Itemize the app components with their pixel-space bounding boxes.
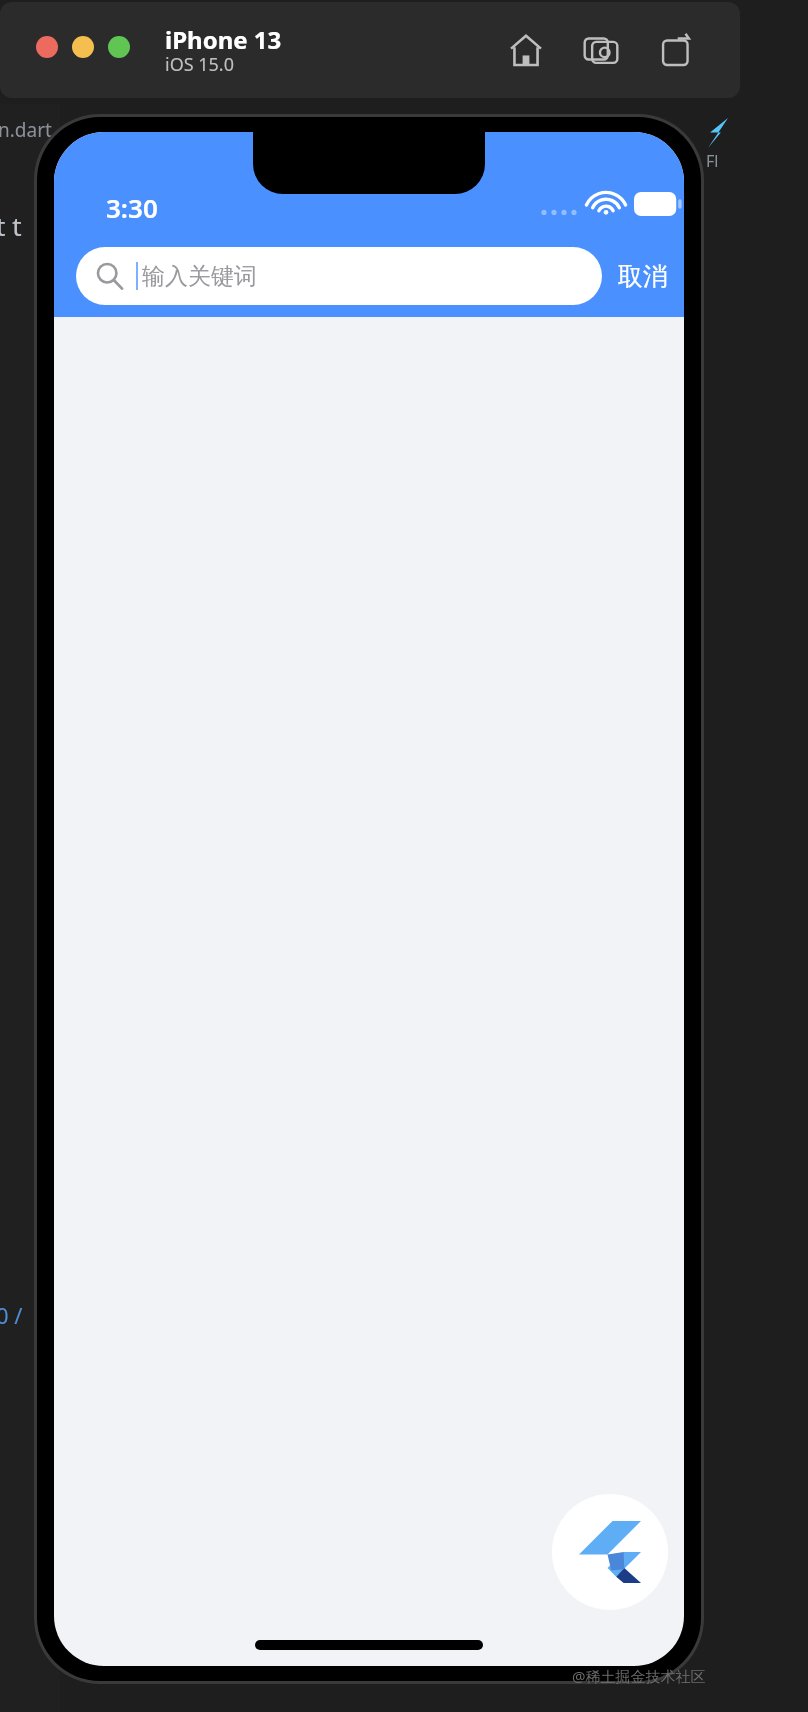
staticText: 3:30 bbox=[106, 190, 158, 225]
button[interactable] bbox=[72, 36, 94, 58]
button[interactable]: Home bbox=[500, 24, 552, 76]
staticText: iOS 15.0 bbox=[165, 52, 234, 77]
staticText: 0 / bbox=[0, 1300, 23, 1330]
staticText: t t bbox=[0, 208, 22, 243]
staticText: n.dart bbox=[0, 117, 52, 143]
button[interactable]: Rotate bbox=[650, 24, 702, 76]
staticText: 取消 bbox=[618, 261, 668, 292]
other: Battery bbox=[634, 192, 682, 216]
staticText: 输入关键词 bbox=[142, 262, 257, 291]
button[interactable] bbox=[36, 36, 58, 58]
button[interactable]: 输入关键词 bbox=[76, 247, 602, 305]
button[interactable]: Flutter bbox=[552, 1494, 668, 1610]
button[interactable]: 取消 bbox=[602, 247, 684, 305]
staticText: @稀土掘金技术社区 bbox=[572, 1666, 706, 1686]
staticText: Fl bbox=[706, 150, 719, 172]
staticText: iPhone 13 bbox=[165, 23, 282, 56]
button[interactable] bbox=[108, 36, 130, 58]
other: Wi-Fi bbox=[588, 188, 624, 216]
button[interactable]: Screenshot bbox=[575, 24, 627, 76]
staticText: × bbox=[70, 112, 83, 142]
